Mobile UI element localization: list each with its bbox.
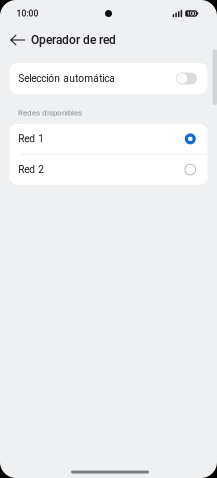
button[interactable]: Red 1 [9,124,207,154]
staticText: Redes disponibles [18,108,82,117]
staticText: 10:00 [16,8,38,18]
staticText: 100 [187,10,196,17]
button[interactable]: Red 2 [9,155,207,185]
staticText: Selección automática [18,73,115,84]
staticText: Red 2 [18,164,44,175]
staticText: Red 1 [18,133,44,145]
button[interactable]: Selección automática [9,63,207,94]
staticText: Operador de red [31,33,116,47]
button[interactable]: Back [0,28,29,52]
